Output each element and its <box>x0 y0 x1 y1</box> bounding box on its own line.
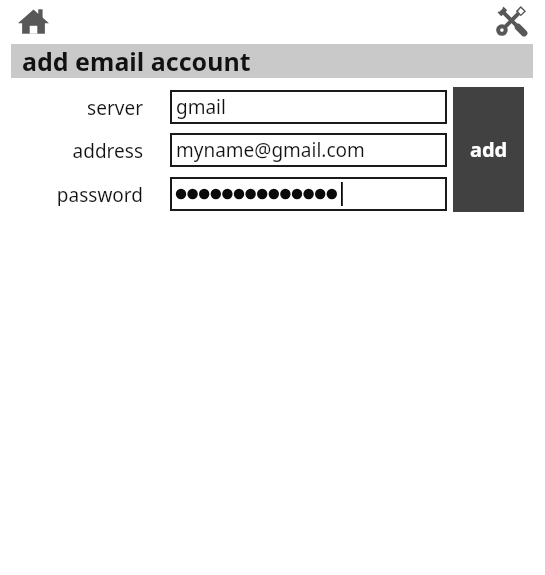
button[interactable]: Settings <box>495 4 528 37</box>
staticText: add email account <box>22 44 251 78</box>
button[interactable]: Home <box>17 5 50 38</box>
button[interactable]: myname@gmail.com <box>170 133 447 167</box>
button[interactable]: add email account <box>11 44 533 78</box>
button[interactable] <box>170 177 447 211</box>
staticText: server <box>23 95 143 119</box>
staticText: gmail <box>176 94 226 120</box>
staticText: myname@gmail.com <box>176 137 365 163</box>
staticText: address <box>23 138 143 162</box>
staticText: password <box>23 182 143 206</box>
button[interactable]: gmail <box>170 90 447 124</box>
staticText: add <box>470 136 508 163</box>
button[interactable]: add <box>453 87 524 212</box>
